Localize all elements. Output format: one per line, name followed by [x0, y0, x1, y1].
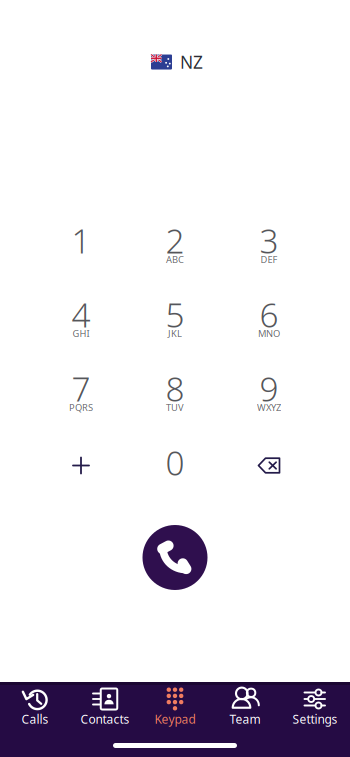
staticText — [174, 475, 176, 488]
staticText: PQRS — [69, 401, 93, 414]
button[interactable]: Settings — [280, 687, 350, 725]
button[interactable]: Team — [210, 687, 280, 725]
staticText: Keypad — [154, 711, 195, 727]
button[interactable]: 2 — [128, 218, 222, 274]
staticText: 6 — [259, 292, 278, 337]
staticText: 7 — [71, 366, 90, 411]
staticText: Calls — [21, 711, 48, 727]
button[interactable]: Keypad — [140, 687, 210, 725]
button[interactable]: Plus — [34, 440, 128, 496]
button[interactable]: Contacts — [70, 687, 140, 725]
staticText: 9 — [259, 366, 278, 411]
staticText: MNO — [258, 327, 280, 340]
button[interactable]: 1 — [34, 218, 128, 274]
button[interactable]: 6 — [222, 292, 316, 348]
staticText: DEF — [260, 253, 277, 266]
button[interactable]: 5 — [128, 292, 222, 348]
staticText: 2 — [165, 218, 184, 263]
button[interactable]: 9 — [222, 366, 316, 422]
button[interactable]: 4 — [34, 292, 128, 348]
staticText: WXYZ — [257, 401, 281, 414]
button[interactable]: Calls — [0, 687, 70, 725]
staticText: 4 — [71, 292, 90, 337]
button[interactable]: Delete — [222, 440, 316, 496]
staticText: 5 — [165, 292, 184, 337]
button[interactable]: Call — [142, 525, 207, 590]
button[interactable]: 3 — [222, 218, 316, 274]
staticText: 0 — [165, 440, 184, 485]
button[interactable]: 7 — [34, 366, 128, 422]
staticText: NZ — [180, 50, 203, 73]
staticText: Contacts — [80, 711, 129, 727]
staticText: 3 — [259, 218, 278, 263]
staticText: ABC — [166, 253, 184, 266]
staticText: TUV — [166, 401, 184, 414]
button[interactable]: NZ — [151, 51, 203, 73]
button[interactable]: 8 — [128, 366, 222, 422]
staticText: Team — [229, 711, 260, 727]
staticText: 1 — [71, 218, 90, 263]
staticText — [80, 253, 82, 266]
staticText: 8 — [165, 366, 184, 411]
button[interactable]: 0 — [128, 440, 222, 496]
staticText: JKL — [168, 327, 182, 340]
staticText: Settings — [292, 711, 337, 727]
staticText: GHI — [72, 327, 89, 340]
